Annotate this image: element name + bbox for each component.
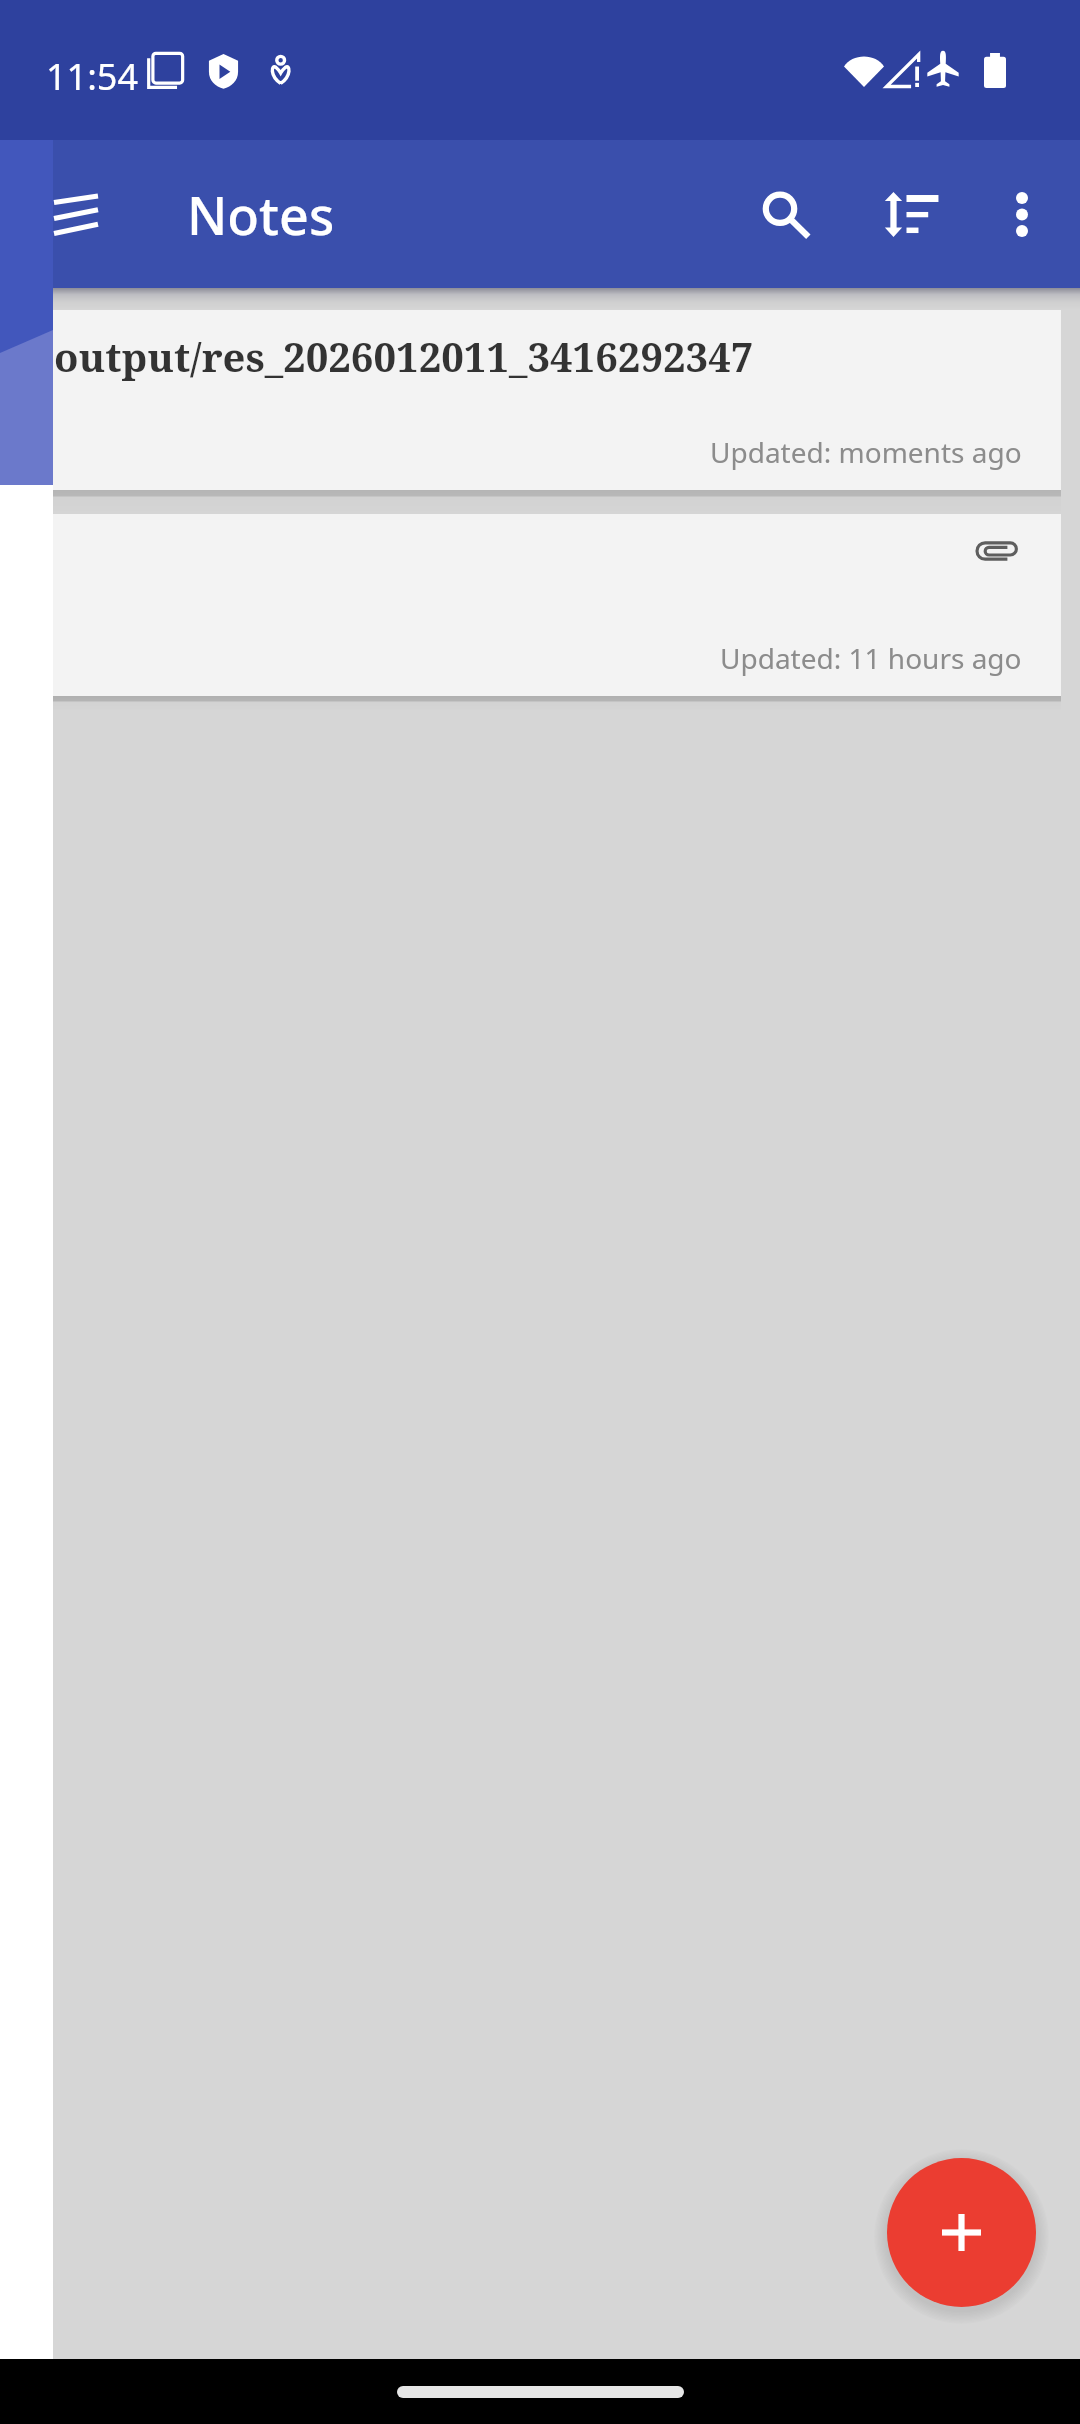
staticText: 11:54: [46, 52, 139, 101]
button[interactable]: More options: [974, 140, 1070, 288]
staticText: Notes: [187, 179, 335, 250]
staticText: output/res_2026012011_3416292347: [54, 329, 754, 383]
button[interactable]: Sort: [850, 140, 974, 288]
button[interactable]: output/res_2026012011_3416292347: [53, 310, 1061, 490]
staticText: Updated: 11 hours ago: [720, 639, 1022, 677]
button[interactable]: Updated: 11 hours ago: [53, 514, 1061, 696]
staticText: Updated: moments ago: [710, 433, 1022, 471]
button[interactable]: Open navigation drawer: [53, 140, 157, 288]
button[interactable]: Search: [721, 140, 850, 288]
button[interactable]: Add note: [887, 2158, 1036, 2307]
